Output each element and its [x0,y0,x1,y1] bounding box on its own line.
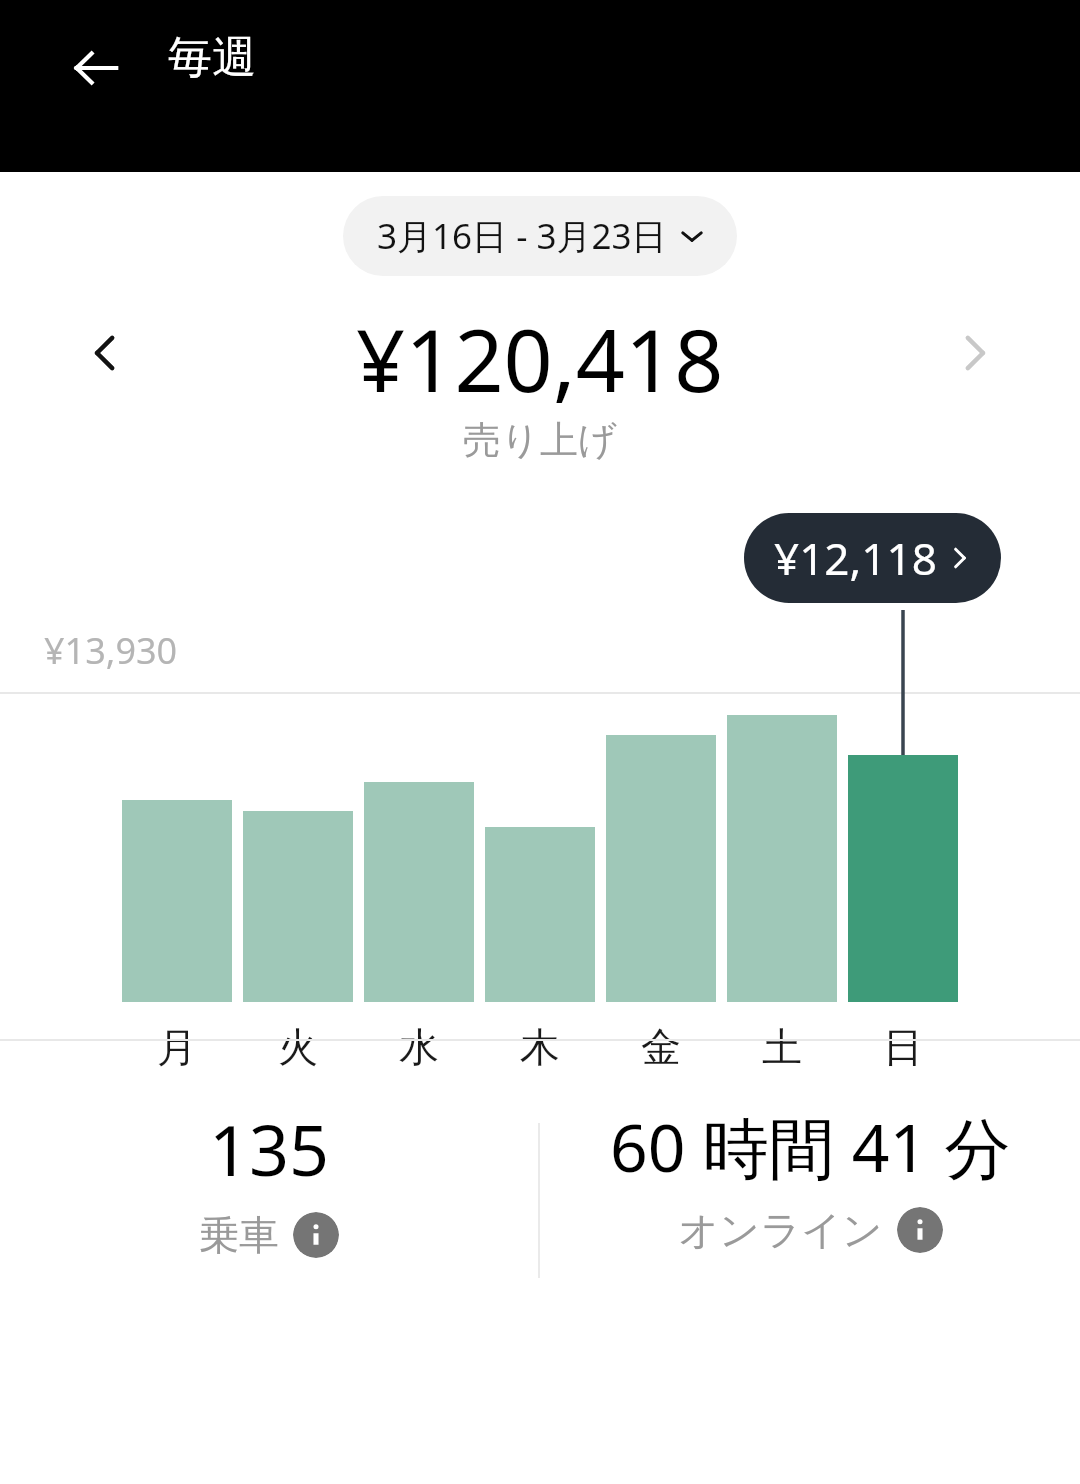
staticText: 日 [883,1022,923,1072]
staticText: 3月16日 - 3月23日 [377,212,667,260]
button[interactable]: Previous week [66,314,144,392]
staticText: 135 [209,1101,330,1196]
staticText: 乗車 [199,1210,279,1260]
button[interactable]: ¥12,118 [744,513,1001,603]
button[interactable]: 135 [0,1101,538,1260]
staticText: 金 [641,1022,681,1072]
staticText: 60 時間 41 分 [610,1101,1011,1191]
staticText: 毎週 [168,30,256,85]
staticText: 水 [399,1022,439,1072]
button[interactable]: 3月16日 - 3月23日 [343,196,737,276]
staticText: 売り上げ [0,416,1080,464]
staticText: ¥13,930 [44,626,178,675]
button[interactable]: Next week [936,314,1014,392]
staticText: ¥12,118 [774,528,937,588]
staticText: オンライン [678,1205,883,1255]
staticText: 木 [520,1022,560,1072]
button[interactable]: More info [897,1207,943,1253]
button[interactable]: More info [293,1212,339,1258]
staticText: 土 [762,1022,802,1072]
staticText: 月 [157,1022,197,1072]
button[interactable]: 60 時間 41 分 [540,1101,1080,1255]
button[interactable]: Back [52,24,140,112]
staticText: ¥120,418 [356,300,724,406]
staticText: 火 [278,1022,318,1072]
